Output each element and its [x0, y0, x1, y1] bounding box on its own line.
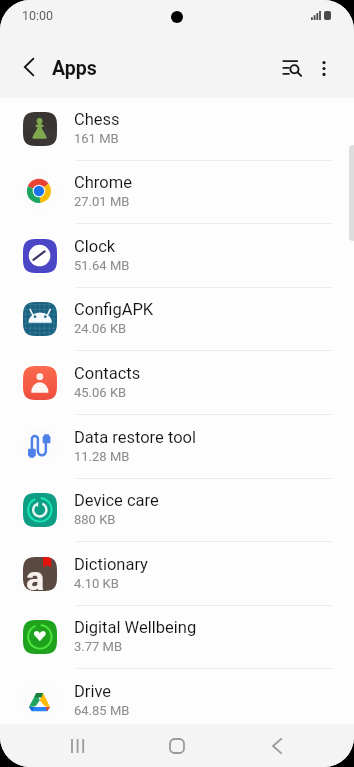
- staticText: Chess: [74, 110, 120, 129]
- staticText: 24.06 KB: [74, 321, 127, 336]
- button[interactable]: Device care: [0, 478, 354, 542]
- staticText: 10:00: [22, 8, 54, 23]
- button[interactable]: Data restore tool: [0, 415, 354, 479]
- button[interactable]: Search: [273, 50, 309, 86]
- staticText: 880 KB: [74, 512, 116, 527]
- button[interactable]: ConfigAPK: [0, 287, 354, 351]
- staticText: 161 MB: [74, 131, 119, 146]
- staticText: a: [26, 558, 45, 591]
- staticText: 51.64 MB: [74, 258, 130, 273]
- staticText: 27.01 MB: [74, 194, 130, 209]
- button[interactable]: Drive: [0, 669, 354, 733]
- staticText: Drive: [74, 682, 112, 701]
- button[interactable]: More options: [306, 50, 342, 86]
- button[interactable]: Contacts: [0, 351, 354, 415]
- button[interactable]: Clock: [0, 224, 354, 288]
- staticText: Digital Wellbeing: [74, 618, 197, 637]
- staticText: 45.06 KB: [74, 385, 127, 400]
- staticText: Clock: [74, 237, 116, 256]
- button[interactable]: a: [0, 542, 354, 606]
- staticText: Device care: [74, 491, 159, 510]
- staticText: 11.28 MB: [74, 449, 130, 464]
- button[interactable]: Digital Wellbeing: [0, 605, 354, 669]
- button[interactable]: Home: [155, 724, 199, 767]
- staticText: Data restore tool: [74, 428, 196, 447]
- button[interactable]: Chess: [0, 97, 354, 161]
- staticText: 3.77 MB: [74, 639, 123, 654]
- staticText: Contacts: [74, 364, 141, 383]
- staticText: Apps: [52, 57, 97, 80]
- staticText: Chrome: [74, 173, 132, 192]
- staticText: 64.85 MB: [74, 703, 130, 718]
- button[interactable]: Navigate up: [11, 49, 47, 85]
- staticText: 4.10 KB: [74, 576, 119, 591]
- button[interactable]: Back: [255, 724, 299, 767]
- staticText: Dictionary: [74, 555, 148, 574]
- button[interactable]: Recents: [56, 724, 100, 767]
- button[interactable]: Chrome: [0, 160, 354, 224]
- staticText: ConfigAPK: [74, 300, 154, 319]
